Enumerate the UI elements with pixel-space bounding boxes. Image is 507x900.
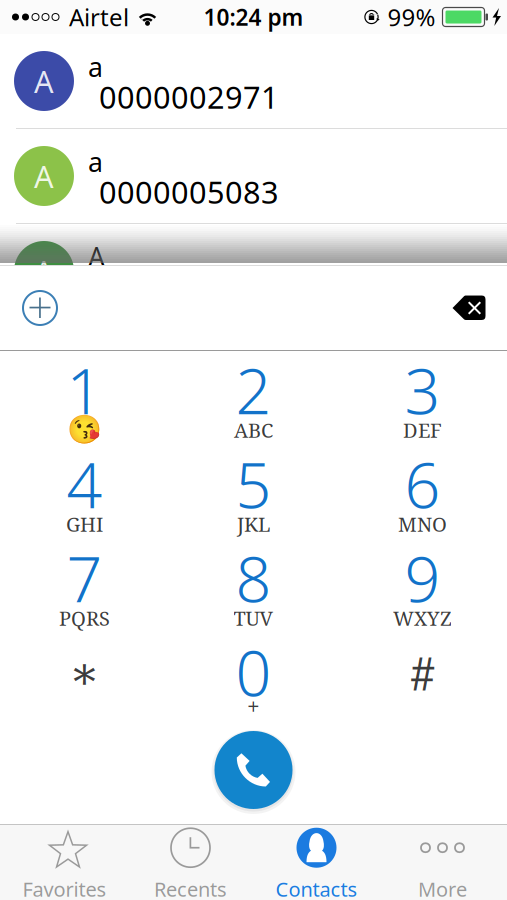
staticText: 10:24 pm	[203, 2, 303, 32]
button[interactable]: Recents	[127, 824, 253, 900]
staticText: Favorites	[22, 876, 106, 900]
button[interactable]: 2	[169, 351, 338, 445]
staticText: 99%	[387, 1, 435, 33]
staticText: A	[34, 61, 54, 101]
button[interactable]: 1	[0, 351, 169, 445]
button[interactable]: 5	[169, 445, 338, 539]
staticText: JKL	[237, 510, 270, 538]
staticText: 0000005083	[99, 171, 279, 212]
staticText: a	[88, 49, 103, 84]
staticText: 3	[404, 348, 440, 432]
button[interactable]: Contacts	[253, 824, 379, 900]
button[interactable]: Add contact	[10, 278, 70, 338]
button[interactable]: 0	[169, 633, 338, 727]
staticText: 0000002971	[99, 76, 279, 117]
staticText: ∗	[69, 647, 100, 699]
staticText: 8	[235, 536, 271, 620]
button[interactable]: 7	[0, 539, 169, 633]
button[interactable]: 4	[0, 445, 169, 539]
button[interactable]: Delete	[439, 278, 499, 338]
staticText: GHI	[66, 510, 103, 538]
staticText: MNO	[398, 510, 447, 538]
staticText: Contacts	[275, 876, 357, 900]
staticText: 😘	[67, 413, 102, 445]
button[interactable]: 9	[338, 539, 507, 633]
staticText: Recents	[154, 876, 227, 900]
staticText: a	[88, 144, 103, 179]
button[interactable]: 3	[338, 351, 507, 445]
staticText: 7	[66, 536, 102, 620]
staticText: 6	[404, 442, 440, 526]
button[interactable]: A	[0, 224, 507, 318]
staticText: 2	[235, 348, 271, 432]
button[interactable]: A	[0, 129, 507, 223]
staticText: 0	[235, 630, 271, 714]
staticText: More	[418, 876, 467, 900]
staticText: A	[34, 251, 54, 291]
button[interactable]: Call	[205, 722, 301, 818]
staticText: TUV	[233, 604, 273, 632]
button[interactable]: 8	[169, 539, 338, 633]
button[interactable]: A	[0, 34, 507, 128]
staticText: PQRS	[59, 604, 110, 632]
staticText: +	[247, 691, 260, 721]
staticText: 1	[66, 348, 102, 432]
staticText: A	[34, 156, 54, 196]
staticText: 5	[235, 442, 271, 526]
button[interactable]: Favorites	[1, 824, 127, 900]
staticText: WXYZ	[393, 604, 452, 632]
button[interactable]: ∗	[0, 633, 169, 727]
staticText: #	[410, 642, 435, 704]
button[interactable]: #	[338, 633, 507, 727]
button[interactable]: More	[379, 824, 505, 900]
staticText: 9	[404, 536, 440, 620]
staticText: Airtel	[69, 1, 129, 33]
staticText: ABC	[234, 416, 273, 444]
staticText: A	[88, 239, 105, 274]
button[interactable]: 6	[338, 445, 507, 539]
staticText: 4	[66, 442, 102, 526]
staticText: DEF	[403, 416, 442, 444]
